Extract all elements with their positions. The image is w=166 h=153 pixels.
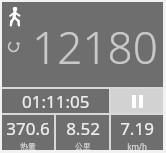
staticText: 7.19 — [120, 117, 154, 140]
staticText: 公里 — [75, 141, 91, 150]
button[interactable]: 370.6 — [2, 115, 54, 150]
staticText: km/h — [127, 141, 147, 150]
other: Sync — [7, 40, 20, 53]
button[interactable]: Pause — [111, 89, 163, 113]
staticText: 热量 — [20, 141, 36, 150]
staticText: 01:11:05 — [22, 90, 90, 113]
button[interactable]: 01:11:05 — [2, 89, 109, 113]
staticText: 370.6 — [6, 117, 50, 140]
staticText: 8.52 — [66, 117, 100, 140]
button[interactable]: 8.52 — [56, 115, 109, 150]
button[interactable]: 7.19 — [111, 115, 163, 150]
button[interactable]: Activity: walking — [2, 2, 163, 87]
staticText: 12180 — [24, 17, 166, 77]
other: Activity: walking — [7, 7, 23, 26]
